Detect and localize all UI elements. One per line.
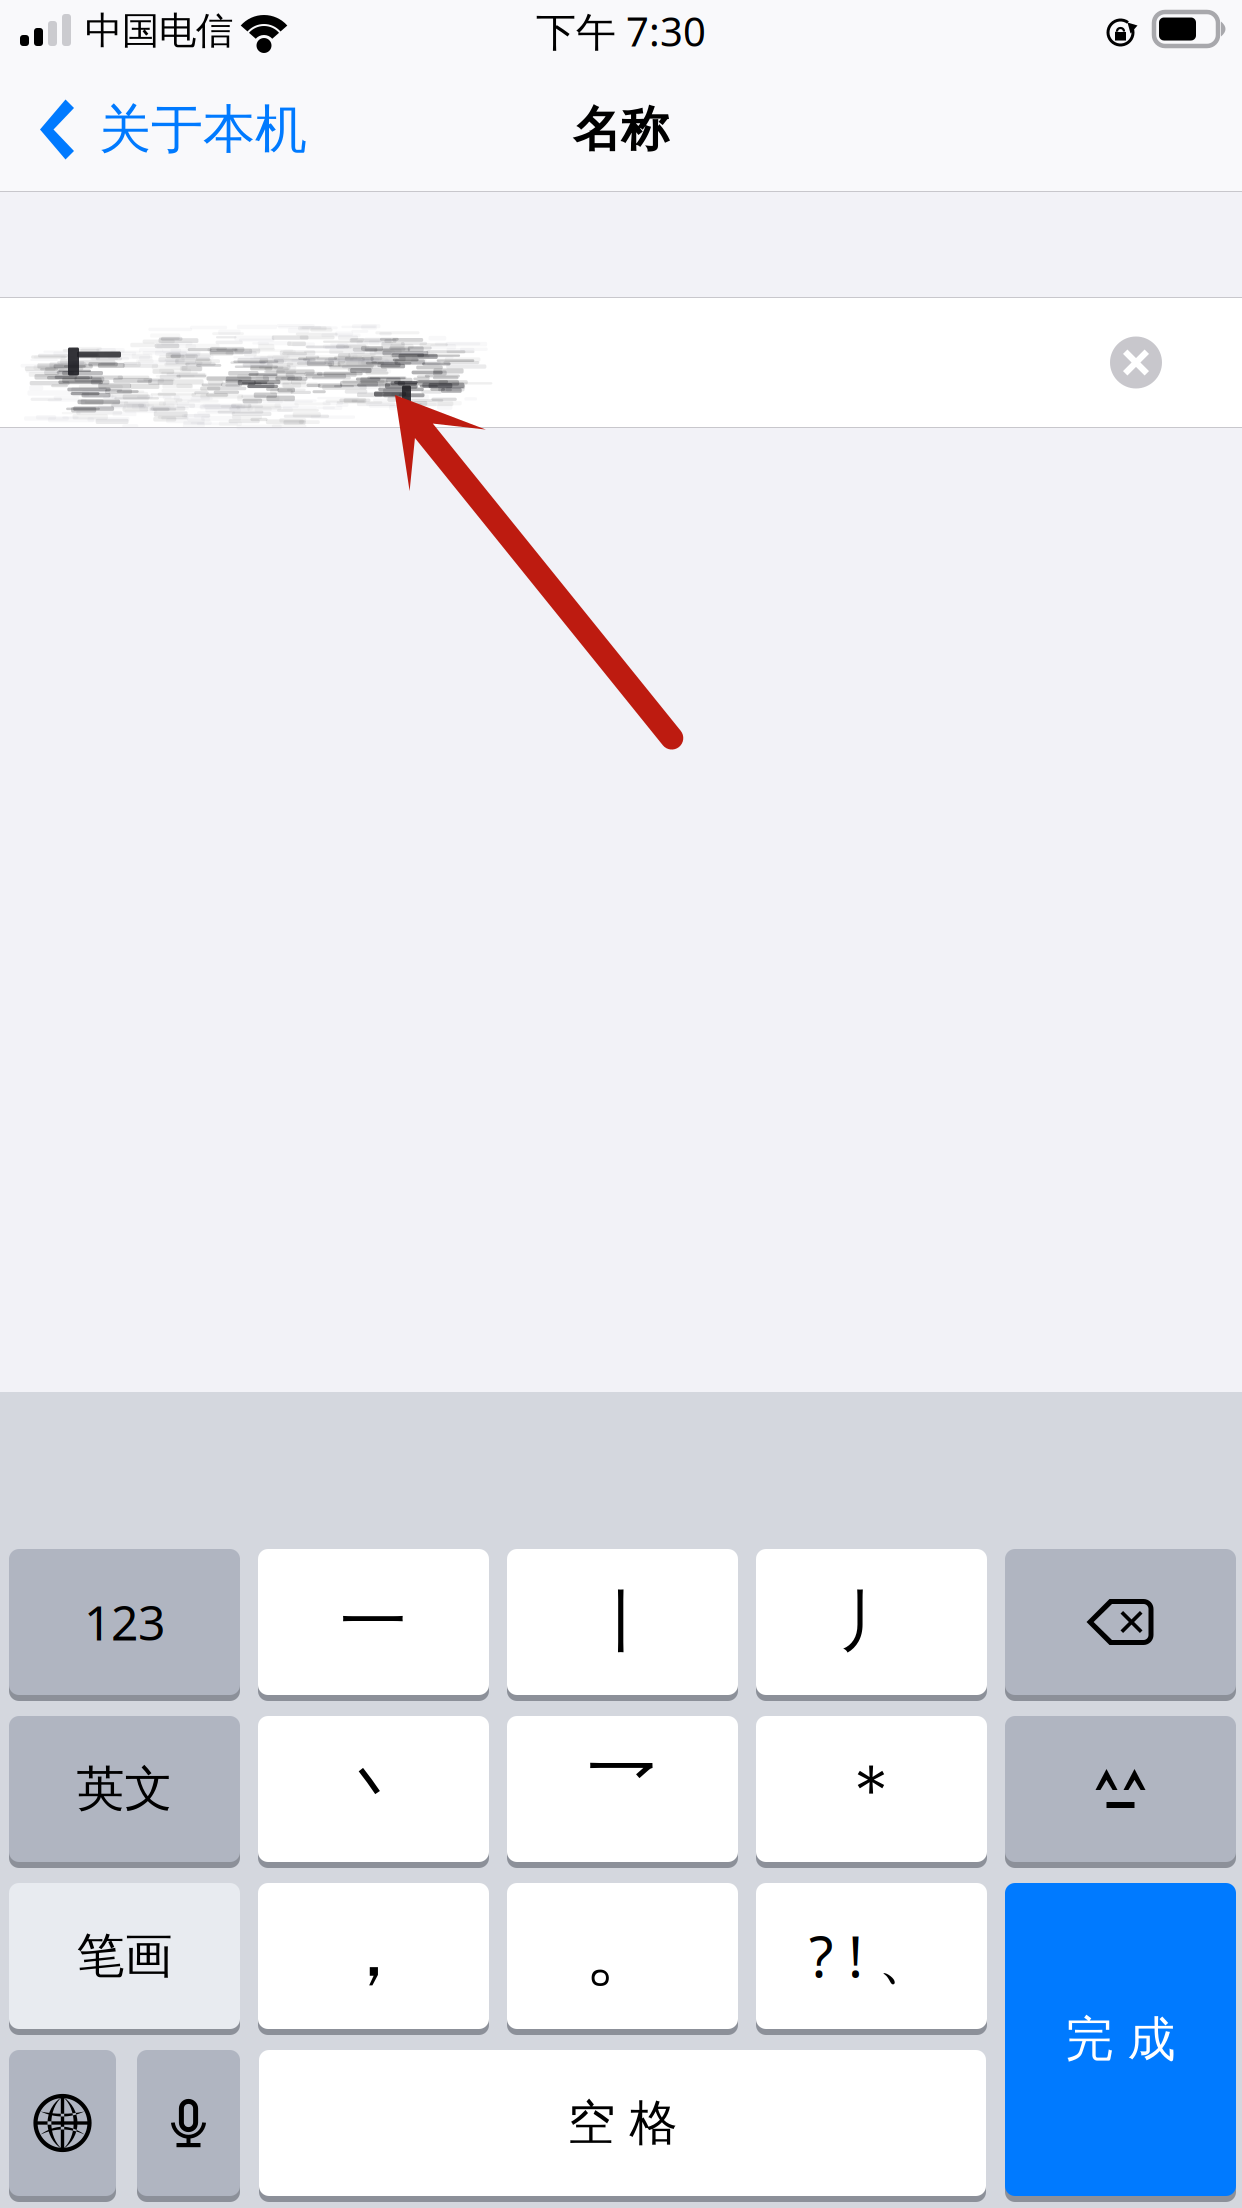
button[interactable]: 丿 xyxy=(756,1549,987,1698)
button[interactable]: 删除 xyxy=(1005,1549,1236,1698)
button[interactable]: 丨 xyxy=(507,1549,738,1698)
button[interactable]: 清除文本 xyxy=(1110,336,1162,388)
button[interactable]: ， xyxy=(258,1883,489,2032)
staticText: 中国电信 xyxy=(85,8,233,54)
button[interactable]: 丶 xyxy=(258,1716,489,1865)
staticText: 空 格 xyxy=(567,2093,677,2152)
button[interactable]: 切换键盘 xyxy=(9,2050,116,2199)
staticText: ? ! 、 xyxy=(809,1919,934,1993)
staticText: 丶 xyxy=(340,1748,407,1830)
staticText: 完 成 xyxy=(1065,2010,1175,2069)
button[interactable]: 英文 xyxy=(9,1716,240,1865)
staticText: 丨 xyxy=(589,1581,656,1663)
button[interactable]: 完 成 xyxy=(1005,1883,1236,2199)
button[interactable]: 笔画 xyxy=(9,1883,240,2032)
button[interactable]: 关于本机 xyxy=(0,78,307,181)
button[interactable]: 语音输入 xyxy=(137,2050,240,2199)
button[interactable]: ? ! 、 xyxy=(756,1883,987,2032)
staticText: 一 xyxy=(340,1581,407,1663)
staticText: 123 xyxy=(84,1590,165,1654)
staticText: 名称 xyxy=(573,100,669,159)
button[interactable]: 空 格 xyxy=(259,2050,986,2199)
button[interactable]: 乛 xyxy=(507,1716,738,1865)
staticText: 关于本机 xyxy=(99,98,307,161)
button[interactable]: 一 xyxy=(258,1549,489,1698)
staticText: 下午 7:30 xyxy=(536,4,706,57)
button[interactable]: 颜文字 xyxy=(1005,1716,1236,1865)
staticText: 。 xyxy=(584,1904,661,1999)
button[interactable]: 123 xyxy=(9,1549,240,1698)
staticText: 英文 xyxy=(76,1759,172,1818)
button[interactable]: ＊ xyxy=(756,1716,987,1865)
staticText: 乛 xyxy=(589,1748,656,1830)
staticText: ， xyxy=(336,1905,411,1997)
button[interactable]: 。 xyxy=(507,1883,738,2032)
staticText: 笔画 xyxy=(76,1926,172,1985)
staticText: 丿 xyxy=(838,1581,905,1663)
staticText: ＊ xyxy=(838,1748,905,1830)
